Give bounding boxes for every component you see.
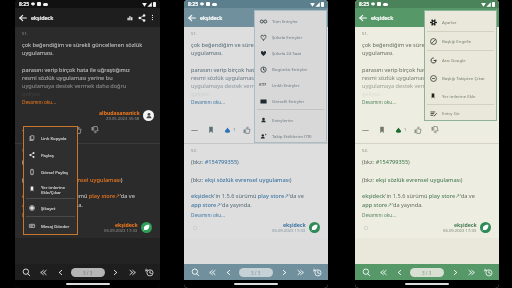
button[interactable]: 3 / 3 <box>71 268 105 277</box>
button[interactable]: Avatar <box>141 222 152 233</box>
button[interactable]: Previous page <box>393 266 405 278</box>
button[interactable]: Last page <box>126 266 138 278</box>
button[interactable]: Dislike <box>429 124 441 136</box>
button[interactable]: Yer imlerine Ekle <box>424 87 497 104</box>
button[interactable]: Next page <box>109 266 121 278</box>
staticText: 29.05.2023 35:58 <box>274 116 308 122</box>
staticText: Entrylerim <box>272 117 293 123</box>
staticText: geliyor. <box>22 90 41 98</box>
button[interactable]: Statistics <box>292 12 304 24</box>
button[interactable]: First page <box>377 266 389 278</box>
button[interactable]: Next page <box>278 266 290 278</box>
button[interactable]: Görsel Paylaş <box>23 163 78 180</box>
button[interactable]: Başlığı Takipten Çıkar <box>424 69 497 87</box>
button[interactable]: Back <box>356 11 369 24</box>
button[interactable]: History <box>143 266 155 278</box>
button[interactable]: Statistics <box>124 12 136 24</box>
button[interactable]: Avatar <box>143 110 154 121</box>
button[interactable]: First page <box>206 266 218 278</box>
staticText: 52. <box>22 148 28 154</box>
button[interactable]: Next page <box>449 266 461 278</box>
button[interactable]: History <box>311 266 323 278</box>
button[interactable]: Takip Ettiklerim (78) <box>254 129 327 143</box>
button[interactable]: Search <box>20 266 32 278</box>
button[interactable]: Avatar <box>480 222 491 233</box>
staticText: Linkli Entryler <box>272 82 300 88</box>
staticText: (bkz: #154799355) <box>22 158 70 166</box>
button[interactable]: Back <box>185 11 198 24</box>
button[interactable]: Görselli Entryler <box>254 93 327 109</box>
button[interactable]: Bookmark <box>36 124 48 136</box>
button[interactable]: Search <box>360 266 372 278</box>
button[interactable]: More <box>359 124 371 136</box>
button[interactable]: Avatar <box>309 222 320 233</box>
button[interactable]: Back <box>16 11 29 24</box>
button[interactable]: Dislike <box>89 124 101 136</box>
staticText: 06.09.2023 17:33 <box>443 228 477 234</box>
button[interactable]: Last page <box>294 266 306 278</box>
button[interactable]: Link Kopyala <box>23 129 78 146</box>
staticText: 29.05.2023 35:58 <box>106 116 140 122</box>
button[interactable]: Yer imlerine Ekle/Çıkar <box>23 180 78 198</box>
button[interactable]: Like <box>412 124 424 136</box>
button[interactable]: Last page <box>465 266 477 278</box>
staticText: uygulamaya destek vermek daha doğru <box>191 82 296 90</box>
button[interactable]: Dislike <box>258 124 270 136</box>
button[interactable]: Entry Gir <box>424 105 497 121</box>
button[interactable]: Bugünkü Entryler <box>254 61 327 77</box>
button[interactable]: Tüm Entryler <box>254 13 327 29</box>
button[interactable]: More options <box>148 13 157 22</box>
button[interactable]: Ayarlar <box>424 13 497 31</box>
button[interactable]: Avatar <box>482 110 493 121</box>
staticText: Takip Ettiklerim (78) <box>272 133 312 139</box>
button[interactable]: Paylaş <box>23 146 78 163</box>
button[interactable]: More <box>19 124 31 136</box>
staticText: ekşideck <box>283 221 306 228</box>
button[interactable]: Previous page <box>222 266 234 278</box>
staticText: çok beğendiğim ve sürekli güncellenen sö… <box>191 41 312 49</box>
staticText: albudasananick <box>267 109 308 116</box>
button[interactable]: Şükela Entryler <box>254 29 327 45</box>
button[interactable]: Favorite <box>221 124 236 136</box>
button[interactable]: Şikayet <box>23 199 78 216</box>
staticText: Devamını oku... <box>362 212 396 218</box>
button[interactable]: Ara: Google <box>424 51 497 69</box>
button[interactable]: Previous page <box>54 266 66 278</box>
button[interactable]: Entrylerim <box>254 110 327 129</box>
button[interactable]: More <box>188 124 200 136</box>
button[interactable]: Favorite <box>392 124 407 136</box>
staticText: 51. <box>22 31 28 37</box>
button[interactable]: Bookmark <box>376 124 388 136</box>
staticText: Devamını oku... <box>362 99 396 105</box>
button[interactable]: Mesaj Gönder <box>23 217 78 234</box>
staticText: Görselli Entryler <box>272 98 305 104</box>
staticText: Mesaj Gönder <box>41 223 70 229</box>
staticText: Paylaş <box>41 152 54 158</box>
button[interactable]: Like <box>72 124 84 136</box>
staticText: 3 / 3 <box>251 270 261 276</box>
staticText: (bkz: ekşi sözlük evrensel uygulaması) <box>22 176 123 184</box>
staticText: ekşideck'in 1.5.6 sürümü play store↗'da … <box>22 192 135 208</box>
button[interactable]: 3 / 3 <box>410 268 444 277</box>
button[interactable]: Şükela 24 Saat <box>254 45 327 61</box>
button[interactable]: 3 / 3 <box>239 268 273 277</box>
button[interactable]: Başlığı Engelle <box>424 32 497 50</box>
button[interactable]: History <box>482 266 494 278</box>
button[interactable]: Search <box>189 266 201 278</box>
button[interactable]: Like <box>241 124 253 136</box>
staticText: geliyor. <box>362 90 381 98</box>
button[interactable]: Share <box>136 12 148 24</box>
button[interactable]: Bookmark <box>205 124 217 136</box>
staticText: ekşideck'in 1.5.6 sürümü play store↗'da … <box>191 192 304 208</box>
button[interactable]: Favorite <box>52 124 67 136</box>
button[interactable]: HTTP <box>254 77 327 93</box>
button[interactable]: First page <box>37 266 49 278</box>
staticText: 06.09.2023 17:33 <box>272 228 306 234</box>
